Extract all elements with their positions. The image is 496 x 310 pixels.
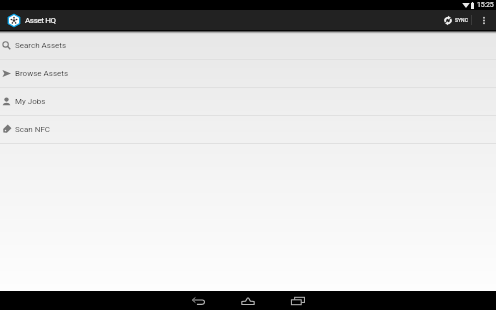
button[interactable]: Home bbox=[230, 291, 266, 310]
button[interactable]: Search Assets bbox=[0, 32, 496, 60]
staticText: Browse Assets bbox=[15, 69, 69, 78]
staticText: Search Assets bbox=[15, 41, 67, 50]
staticText: SYNC bbox=[455, 17, 468, 23]
button[interactable]: Browse Assets bbox=[0, 60, 496, 88]
button[interactable]: Back bbox=[180, 291, 216, 310]
button[interactable]: Scan NFC bbox=[0, 116, 496, 144]
button[interactable]: SYNC bbox=[443, 10, 471, 30]
button[interactable]: Asset HQ bbox=[0, 10, 60, 30]
staticText: Scan NFC bbox=[15, 125, 51, 134]
staticText: Asset HQ bbox=[25, 16, 56, 25]
staticText: 15:25 bbox=[477, 1, 494, 9]
staticText: My Jobs bbox=[15, 97, 46, 106]
button[interactable]: More options bbox=[472, 10, 496, 30]
button[interactable]: My Jobs bbox=[0, 88, 496, 116]
button[interactable]: Recent apps bbox=[280, 291, 316, 310]
